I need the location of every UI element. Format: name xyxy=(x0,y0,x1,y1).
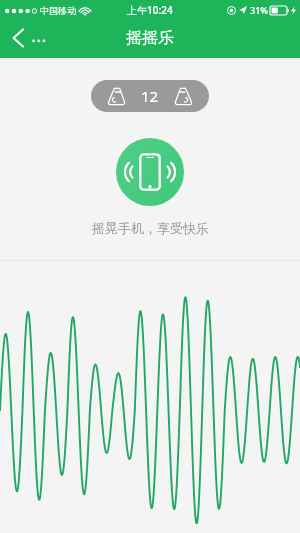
staticText: 上午10:24 xyxy=(127,3,173,17)
staticText: 31% xyxy=(250,4,268,16)
staticText: 摇晃手机，享受快乐 xyxy=(92,220,209,236)
staticText: 12 xyxy=(141,86,159,106)
staticText: 中国移动 xyxy=(40,5,76,16)
button[interactable]: 12 xyxy=(91,80,209,112)
button[interactable]: Shake phone xyxy=(116,138,184,206)
staticText: 摇摇乐 xyxy=(126,28,174,48)
button[interactable]: Back xyxy=(0,22,58,54)
